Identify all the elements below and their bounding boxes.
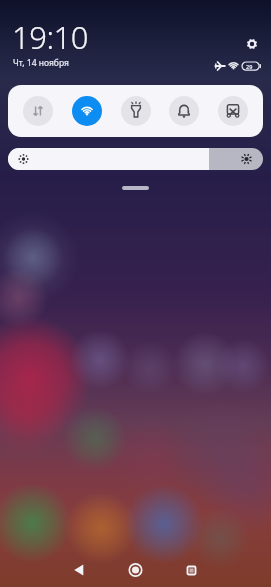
button[interactable]	[121, 96, 151, 126]
staticText: 19:10	[12, 16, 88, 58]
button[interactable]	[169, 96, 199, 126]
button[interactable]	[118, 552, 152, 586]
button[interactable]	[23, 96, 53, 126]
button[interactable]	[218, 96, 248, 126]
button[interactable]	[72, 96, 102, 126]
staticText: 29	[246, 63, 253, 70]
button[interactable]	[174, 552, 208, 586]
button[interactable]	[62, 552, 96, 586]
button[interactable]	[245, 37, 259, 51]
button[interactable]	[8, 148, 263, 170]
staticText: Чт, 14 ноября	[13, 57, 69, 69]
